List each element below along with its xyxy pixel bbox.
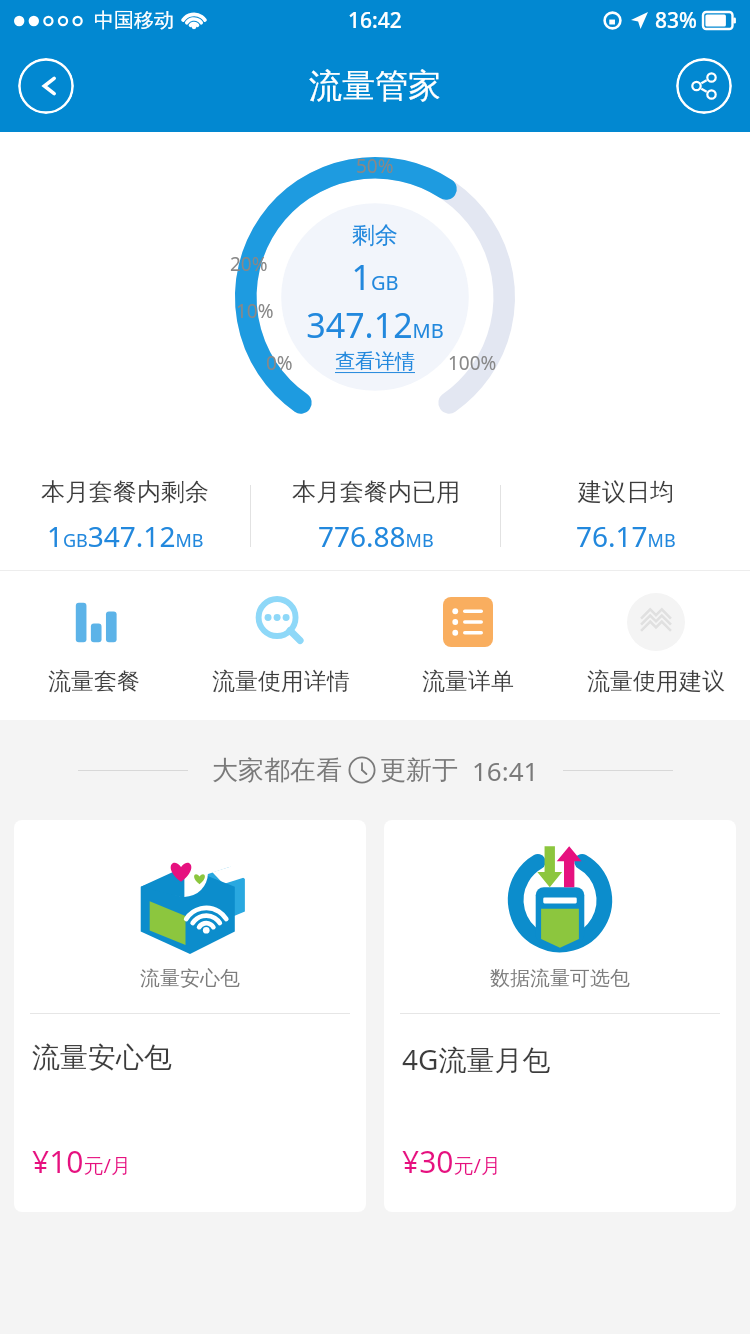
staticText: 查看详情 bbox=[335, 349, 415, 374]
staticText: 流量详单 bbox=[422, 667, 514, 696]
staticText: 76.17MB bbox=[576, 517, 676, 555]
button[interactable]: 流量套餐 bbox=[0, 585, 187, 702]
staticText: 流量套餐 bbox=[48, 667, 140, 696]
staticText: 16:41 bbox=[472, 753, 539, 788]
staticText: 1GB347.12MB bbox=[47, 517, 204, 555]
staticText: 776.88MB bbox=[318, 517, 434, 555]
staticText: 更新于 bbox=[380, 754, 458, 787]
staticText: 流量使用详情 bbox=[212, 667, 350, 696]
staticText: 347.12MB bbox=[306, 302, 444, 348]
staticText: 流量使用建议 bbox=[587, 667, 725, 696]
button[interactable]: 流量使用建议 bbox=[562, 585, 750, 702]
staticText: 剩余 bbox=[352, 221, 398, 250]
staticText: 中国移动 bbox=[94, 8, 174, 33]
staticText: 50% bbox=[356, 153, 394, 179]
staticText: 流量安心包 bbox=[140, 966, 240, 991]
staticText: 16:42 bbox=[348, 6, 402, 35]
button[interactable]: Back bbox=[18, 58, 74, 114]
button[interactable]: 流量安心包 bbox=[14, 820, 366, 1212]
staticText: 0% bbox=[266, 350, 293, 376]
staticText: 本月套餐内已用 bbox=[292, 477, 460, 507]
button[interactable]: 流量使用详情 bbox=[187, 585, 374, 702]
staticText: 20% bbox=[230, 251, 268, 277]
staticText: ¥30元/月 bbox=[402, 1141, 501, 1182]
button[interactable]: 本月套餐内剩余 bbox=[0, 462, 250, 570]
staticText: 本月套餐内剩余 bbox=[41, 477, 209, 507]
staticText: ¥10元/月 bbox=[32, 1141, 131, 1182]
staticText: 10% bbox=[236, 298, 274, 324]
staticText: 4G流量月包 bbox=[402, 1040, 551, 1078]
button[interactable]: 建议日均 bbox=[501, 462, 750, 570]
button[interactable]: 流量详单 bbox=[374, 585, 562, 702]
staticText: 100% bbox=[448, 350, 497, 376]
staticText: 83% bbox=[655, 6, 697, 35]
staticText: 流量管家 bbox=[309, 65, 441, 107]
button[interactable]: 查看详情 bbox=[335, 349, 415, 374]
button[interactable]: 数据流量可选包 bbox=[384, 820, 736, 1212]
button[interactable]: Share bbox=[676, 58, 732, 114]
staticText: 建议日均 bbox=[578, 477, 674, 507]
staticText: 大家都在看 bbox=[212, 754, 342, 787]
staticText: 流量安心包 bbox=[32, 1040, 172, 1075]
button[interactable]: 本月套餐内已用 bbox=[251, 462, 500, 570]
staticText: 数据流量可选包 bbox=[490, 966, 630, 991]
staticText: 1GB bbox=[351, 254, 399, 300]
